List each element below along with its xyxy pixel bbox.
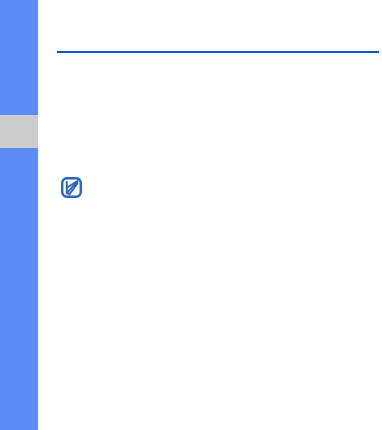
button[interactable]: Note: [60, 176, 83, 199]
button[interactable]: [0, 0, 38, 430]
